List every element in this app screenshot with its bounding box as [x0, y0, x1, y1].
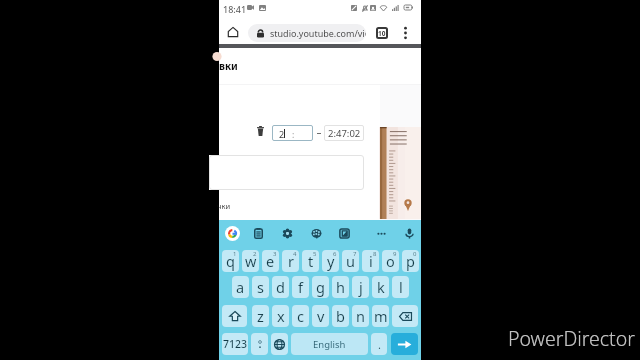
staticText: o — [386, 251, 395, 271]
staticText: 2 — [279, 128, 285, 140]
button[interactable]: Themes — [307, 224, 325, 242]
button[interactable]: v — [312, 305, 329, 327]
button[interactable]: h — [332, 276, 349, 298]
button[interactable]: More options — [372, 224, 390, 242]
button[interactable] — [209, 155, 364, 190]
button[interactable]: Clipboard — [249, 224, 267, 242]
staticText: v — [317, 306, 325, 326]
button[interactable]: More options — [396, 23, 415, 42]
button[interactable] — [391, 333, 418, 355]
staticText: r — [288, 251, 294, 271]
staticText: t — [308, 251, 314, 271]
button[interactable]: u — [342, 250, 359, 272]
staticText: j — [359, 277, 363, 297]
button[interactable]: p — [402, 250, 419, 272]
staticText: 7 — [353, 250, 357, 258]
button[interactable]: a — [232, 276, 249, 298]
button[interactable]: j — [352, 276, 369, 298]
button[interactable]: w — [242, 250, 259, 272]
button[interactable]: x — [272, 305, 289, 327]
button[interactable]: l — [392, 276, 409, 298]
staticText: l — [399, 277, 403, 297]
button[interactable]: d — [272, 276, 289, 298]
staticText: 7123 — [223, 337, 248, 351]
button[interactable]: 7123 — [222, 333, 248, 355]
button[interactable]: o — [382, 250, 399, 272]
button[interactable]: s — [252, 276, 269, 298]
staticText: i — [369, 251, 373, 271]
button[interactable]: k — [372, 276, 389, 298]
button[interactable]: f — [292, 276, 309, 298]
staticText: 9 — [393, 250, 397, 258]
button[interactable]: m — [372, 305, 389, 327]
staticText: 8 — [373, 250, 377, 258]
button[interactable]: Tabs — [372, 23, 391, 42]
button[interactable]: r — [282, 250, 299, 272]
staticText: 18:41 — [223, 3, 247, 15]
staticText: s — [257, 277, 264, 297]
staticText: . — [378, 337, 381, 352]
staticText: m — [374, 306, 388, 326]
button[interactable]: . — [371, 333, 387, 355]
staticText: c — [297, 306, 304, 326]
button[interactable]: e — [262, 250, 279, 272]
staticText: d — [276, 277, 285, 297]
button[interactable]: z — [252, 305, 269, 327]
staticText: h — [336, 277, 345, 297]
staticText: 0 — [413, 250, 417, 258]
staticText: 3 — [273, 250, 277, 258]
button[interactable] — [251, 333, 268, 355]
button[interactable]: q — [222, 250, 239, 272]
button[interactable]: 2 — [272, 125, 313, 141]
button[interactable]: y — [322, 250, 339, 272]
staticText: u — [346, 251, 355, 271]
button[interactable]: English — [291, 333, 368, 355]
staticText: a — [236, 277, 245, 297]
staticText: f — [298, 277, 303, 297]
staticText: g — [316, 277, 325, 297]
staticText: : — [292, 128, 295, 140]
staticText: чки — [217, 201, 231, 211]
button[interactable]: n — [352, 305, 369, 327]
staticText: e — [266, 251, 275, 271]
button[interactable] — [392, 305, 418, 327]
button[interactable]: g — [312, 276, 329, 298]
staticText: English — [313, 338, 346, 351]
button[interactable]: Voice input — [400, 224, 418, 242]
button[interactable]: Home — [223, 22, 243, 42]
button[interactable] — [222, 305, 247, 327]
staticText: 5 — [313, 250, 317, 258]
button[interactable]: 2:47:02 — [324, 125, 364, 141]
button[interactable]: studio.youtube.com/vid — [248, 24, 366, 42]
button[interactable]: Google search — [225, 226, 240, 241]
button[interactable]: Settings — [278, 224, 296, 242]
staticText: x — [277, 306, 285, 326]
button[interactable]: i — [362, 250, 379, 272]
staticText: 1 — [233, 250, 237, 258]
staticText: p — [406, 251, 415, 271]
staticText: k — [377, 277, 385, 297]
staticText: 2:47:02 — [328, 127, 361, 140]
staticText: 10 — [378, 29, 386, 38]
staticText: studio.youtube.com/vid — [270, 27, 366, 39]
button[interactable]: b — [332, 305, 349, 327]
button[interactable]: t — [302, 250, 319, 272]
button[interactable]: Stickers — [335, 224, 353, 242]
staticText: w — [245, 251, 257, 271]
staticText: 2 — [253, 250, 257, 258]
staticText: q — [226, 251, 235, 271]
staticText: вки — [219, 59, 238, 73]
staticText: 4 — [293, 250, 297, 258]
staticText: z — [257, 306, 264, 326]
staticText: b — [336, 306, 345, 326]
button[interactable] — [271, 333, 288, 355]
staticText: n — [356, 306, 365, 326]
staticText: 6 — [333, 250, 337, 258]
button[interactable]: c — [292, 305, 309, 327]
button[interactable]: Delete — [253, 122, 267, 140]
staticText: y — [327, 251, 335, 271]
staticText: PowerDirector — [508, 325, 635, 352]
